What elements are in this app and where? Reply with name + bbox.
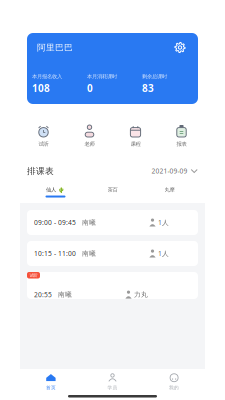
staticText: 阿里巴巴 — [37, 42, 73, 53]
button[interactable]: 课程 — [112, 125, 158, 148]
staticText: 南曦 — [58, 290, 72, 299]
button[interactable]: 丸摩 — [141, 183, 198, 201]
staticText: 试听 — [38, 141, 48, 147]
button[interactable]: 试听 — [27, 272, 198, 299]
staticText: 0 — [87, 81, 93, 95]
staticText: 20:55 — [34, 290, 52, 299]
staticText: 茶百 — [107, 186, 117, 193]
staticText: 剩余总课时 — [142, 73, 167, 80]
button[interactable]: 首页 — [20, 374, 82, 391]
staticText: 老师 — [84, 141, 94, 147]
staticText: 10:15 - 11:00 — [34, 249, 76, 258]
staticText: 学员 — [107, 385, 117, 391]
staticText: 1人 — [158, 218, 169, 227]
staticText: 力丸 — [134, 290, 148, 299]
button[interactable]: 我的 — [143, 374, 205, 391]
button[interactable]: 老师 — [66, 125, 112, 148]
staticText: 丸摩 — [164, 186, 174, 193]
button[interactable]: 仙人 🌵 — [27, 183, 84, 201]
staticText: 2021-09-09 — [151, 167, 187, 175]
staticText: 本月消耗课时 — [87, 73, 117, 80]
staticText: 83 — [142, 81, 154, 95]
staticText: 首页 — [46, 385, 56, 391]
staticText: 108 — [32, 81, 50, 95]
staticText: 1人 — [158, 249, 169, 258]
button[interactable]: 报表 — [158, 125, 204, 148]
staticText: 报表 — [176, 141, 186, 147]
button[interactable]: 试听 — [20, 125, 66, 148]
button[interactable]: 10:15 - 11:00 — [27, 241, 198, 266]
staticText: 我的 — [169, 385, 179, 391]
staticText: 南曦 — [82, 218, 96, 227]
button[interactable]: 茶百 — [84, 183, 141, 201]
button[interactable]: 学员 — [82, 374, 143, 391]
staticText: 南曦 — [82, 249, 96, 258]
staticText: 排课表 — [27, 166, 54, 176]
staticText: 试听 — [29, 273, 37, 278]
staticText: 09:00 - 09:45 — [34, 218, 76, 227]
staticText: 本月报名收入 — [32, 73, 62, 80]
button[interactable]: 2021-09-09 — [151, 164, 198, 178]
button[interactable]: 09:00 - 09:45 — [27, 210, 198, 235]
button[interactable]: 设置 — [172, 39, 188, 55]
staticText: 课程 — [130, 141, 140, 147]
staticText: 仙人 🌵 — [46, 186, 65, 193]
